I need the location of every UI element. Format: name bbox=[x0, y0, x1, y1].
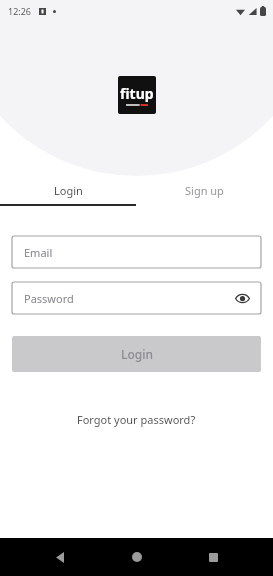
staticText: Sign up bbox=[185, 183, 224, 198]
staticText: Login bbox=[54, 183, 83, 198]
button[interactable]: Password bbox=[12, 282, 261, 314]
staticText: Password bbox=[24, 291, 74, 306]
button[interactable]: Login bbox=[12, 336, 261, 372]
button[interactable]: Back bbox=[43, 540, 77, 574]
button[interactable]: Email bbox=[12, 236, 261, 268]
button[interactable]: Home bbox=[120, 540, 154, 574]
staticText: 12:26 bbox=[8, 5, 32, 17]
staticText: fitup bbox=[120, 84, 154, 103]
staticText: Login bbox=[121, 346, 153, 362]
button[interactable]: Recent apps bbox=[196, 540, 230, 574]
button[interactable]: Sign up bbox=[136, 176, 273, 204]
button[interactable]: Forgot your password? bbox=[0, 412, 273, 427]
button[interactable]: Login bbox=[0, 176, 136, 204]
button[interactable]: Show password bbox=[233, 289, 251, 307]
staticText: Forgot your password? bbox=[77, 412, 196, 427]
staticText: Email bbox=[24, 245, 53, 260]
